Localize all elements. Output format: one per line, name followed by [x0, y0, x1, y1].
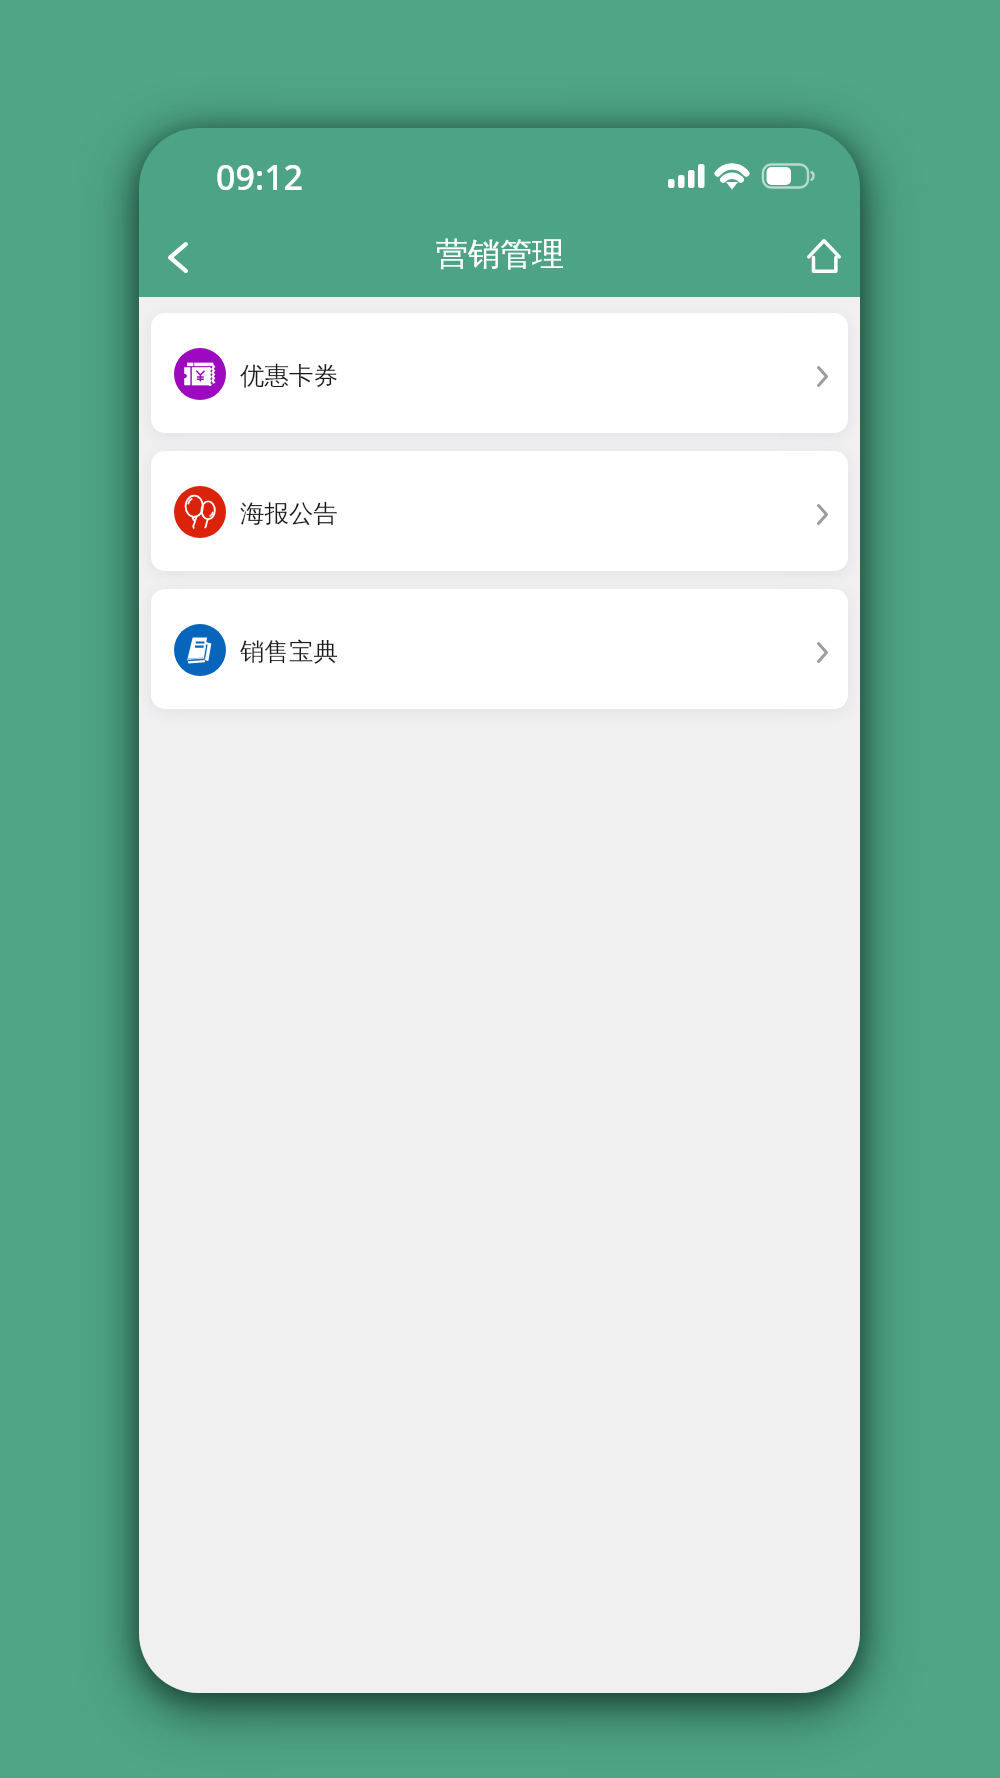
staticText: 海报公告: [240, 498, 338, 529]
button[interactable]: Home: [795, 227, 853, 285]
staticText: 营销管理: [436, 234, 564, 274]
button[interactable]: 销售宝典: [151, 589, 848, 709]
staticText: 销售宝典: [240, 636, 338, 667]
button[interactable]: Back: [148, 228, 206, 286]
staticText: 09:12: [216, 154, 304, 200]
staticText: 优惠卡券: [240, 360, 338, 391]
button[interactable]: 优惠卡券: [151, 313, 848, 433]
button[interactable]: 海报公告: [151, 451, 848, 571]
